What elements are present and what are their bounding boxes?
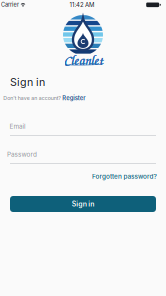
staticText: Register (50, 91, 97, 105)
staticText: 11:42 AM (57, 0, 107, 12)
staticText: Forgotten password? (59, 169, 166, 184)
staticText: Carrier (0, 0, 28, 12)
staticText: Cleanlet (63, 50, 102, 69)
button[interactable]: Password (10, 147, 156, 164)
staticText: Sign in (10, 75, 45, 88)
staticText: Sign in (60, 196, 105, 212)
staticText: Don't have an account? (0, 92, 89, 104)
button[interactable]: Forgotten password? (92, 173, 157, 180)
staticText: Cleanlet (64, 50, 103, 69)
staticText: Password (0, 147, 52, 162)
button[interactable]: Email (10, 119, 156, 136)
staticText: Email (1, 119, 33, 134)
button[interactable]: Sign in (10, 196, 156, 212)
button[interactable]: Register (62, 94, 86, 102)
staticText: Cleanlet (63, 51, 102, 69)
